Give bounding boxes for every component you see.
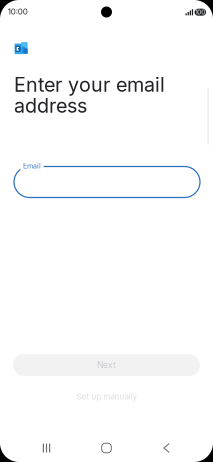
- button[interactable]: Next: [13, 354, 200, 376]
- staticText: Next: [97, 360, 116, 370]
- staticText: Set up manually: [76, 392, 136, 401]
- staticText: Email: [23, 162, 41, 170]
- staticText: Enter your email: [14, 73, 165, 97]
- button[interactable]: Home: [75, 435, 137, 461]
- staticText: 100: [195, 8, 205, 16]
- staticText: 10:00: [8, 7, 28, 16]
- button[interactable]: Recent apps: [15, 435, 77, 461]
- button[interactable]: Back: [135, 435, 197, 461]
- staticText: address: [14, 94, 87, 118]
- button[interactable]: Set up manually: [46, 389, 166, 403]
